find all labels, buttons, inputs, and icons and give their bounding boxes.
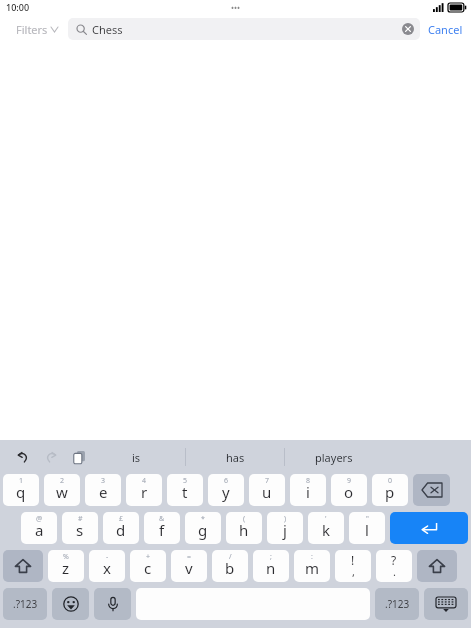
button[interactable]: .?123 bbox=[3, 588, 47, 620]
staticText: w bbox=[56, 482, 68, 502]
staticText: - bbox=[106, 552, 109, 562]
staticText: 0 bbox=[388, 476, 393, 486]
staticText: 10:00 bbox=[6, 1, 30, 13]
button[interactable]: q bbox=[3, 474, 39, 506]
staticText: Filters bbox=[16, 22, 48, 37]
button[interactable]: f bbox=[144, 512, 180, 544]
staticText: q bbox=[16, 482, 26, 502]
button[interactable]: j bbox=[267, 512, 303, 544]
button[interactable]: y bbox=[208, 474, 244, 506]
staticText: is bbox=[132, 450, 141, 465]
staticText: 3 bbox=[101, 476, 106, 486]
button[interactable]: x bbox=[89, 550, 125, 582]
button[interactable]: g bbox=[185, 512, 221, 544]
button[interactable]: players bbox=[285, 440, 383, 474]
staticText: a bbox=[35, 520, 44, 540]
button[interactable]: Hide keyboard bbox=[424, 588, 468, 620]
staticText: Cancel bbox=[428, 22, 463, 37]
button[interactable]: p bbox=[372, 474, 408, 506]
button[interactable]: b bbox=[212, 550, 248, 582]
button[interactable]: e bbox=[85, 474, 121, 506]
button[interactable]: Paste bbox=[68, 446, 90, 468]
staticText: has bbox=[226, 450, 245, 465]
staticText: 6 bbox=[224, 476, 229, 486]
staticText: : bbox=[311, 552, 313, 562]
staticText: b bbox=[225, 558, 235, 578]
staticText: r bbox=[141, 482, 148, 502]
staticText: , bbox=[352, 564, 355, 579]
button[interactable]: l bbox=[349, 512, 385, 544]
staticText: x bbox=[103, 558, 111, 578]
button[interactable]: a bbox=[21, 512, 57, 544]
button[interactable]: Return bbox=[390, 512, 468, 544]
button[interactable]: ! bbox=[335, 550, 371, 582]
button[interactable]: c bbox=[130, 550, 166, 582]
button[interactable]: Filters bbox=[16, 22, 58, 37]
button[interactable]: is bbox=[88, 440, 185, 474]
button[interactable]: n bbox=[253, 550, 289, 582]
button[interactable]: u bbox=[249, 474, 285, 506]
staticText: ' bbox=[325, 514, 327, 524]
staticText: o bbox=[344, 482, 354, 502]
staticText: 8 bbox=[306, 476, 311, 486]
staticText: g bbox=[198, 520, 208, 540]
staticText: / bbox=[229, 552, 232, 562]
staticText: = bbox=[187, 552, 192, 562]
staticText: v bbox=[185, 558, 193, 578]
button[interactable]: r bbox=[126, 474, 162, 506]
staticText: i bbox=[306, 482, 310, 502]
staticText: j bbox=[283, 520, 287, 540]
staticText: c bbox=[144, 558, 152, 578]
button[interactable]: Chess bbox=[68, 18, 420, 40]
button[interactable]: Emoji bbox=[52, 588, 89, 620]
staticText: .?123 bbox=[13, 597, 38, 611]
staticText: . bbox=[393, 564, 396, 579]
button[interactable]: z bbox=[48, 550, 84, 582]
staticText: @ bbox=[36, 514, 43, 524]
staticText: .?123 bbox=[385, 597, 410, 611]
staticText: " bbox=[366, 514, 369, 524]
staticText: 7 bbox=[265, 476, 270, 486]
staticText: d bbox=[116, 520, 126, 540]
staticText: # bbox=[78, 514, 83, 524]
button[interactable]: m bbox=[294, 550, 330, 582]
staticText: t bbox=[182, 482, 188, 502]
button[interactable]: has bbox=[186, 440, 284, 474]
staticText: u bbox=[262, 482, 272, 502]
staticText: z bbox=[62, 558, 70, 578]
button[interactable]: Cancel bbox=[428, 22, 463, 37]
staticText: players bbox=[315, 450, 353, 465]
button[interactable]: Backspace bbox=[413, 474, 450, 506]
button[interactable]: ? bbox=[376, 550, 412, 582]
button[interactable]: Dictation bbox=[94, 588, 131, 620]
staticText: k bbox=[322, 520, 331, 540]
button[interactable]: .?123 bbox=[375, 588, 419, 620]
staticText: p bbox=[385, 482, 395, 502]
button[interactable]: k bbox=[308, 512, 344, 544]
staticText: ••• bbox=[231, 2, 241, 13]
button[interactable]: t bbox=[167, 474, 203, 506]
button[interactable]: v bbox=[171, 550, 207, 582]
staticText: + bbox=[146, 552, 151, 562]
staticText: 5 bbox=[183, 476, 188, 486]
staticText: m bbox=[305, 558, 320, 578]
staticText: l bbox=[365, 520, 369, 540]
staticText: 1 bbox=[19, 476, 24, 486]
button[interactable]: h bbox=[226, 512, 262, 544]
button[interactable]: s bbox=[62, 512, 98, 544]
button[interactable]: Undo bbox=[12, 446, 34, 468]
button[interactable]: Redo bbox=[40, 446, 62, 468]
button[interactable]: i bbox=[290, 474, 326, 506]
button[interactable]: o bbox=[331, 474, 367, 506]
button[interactable]: w bbox=[44, 474, 80, 506]
button[interactable]: d bbox=[103, 512, 139, 544]
staticText: y bbox=[222, 482, 230, 502]
staticText: ( bbox=[243, 514, 246, 524]
button[interactable]: Shift bbox=[3, 550, 43, 582]
staticText: ? bbox=[391, 552, 397, 568]
staticText: £ bbox=[119, 514, 124, 524]
button[interactable]: Shift bbox=[417, 550, 457, 582]
button[interactable]: Clear search bbox=[402, 23, 414, 35]
staticText: h bbox=[239, 520, 249, 540]
